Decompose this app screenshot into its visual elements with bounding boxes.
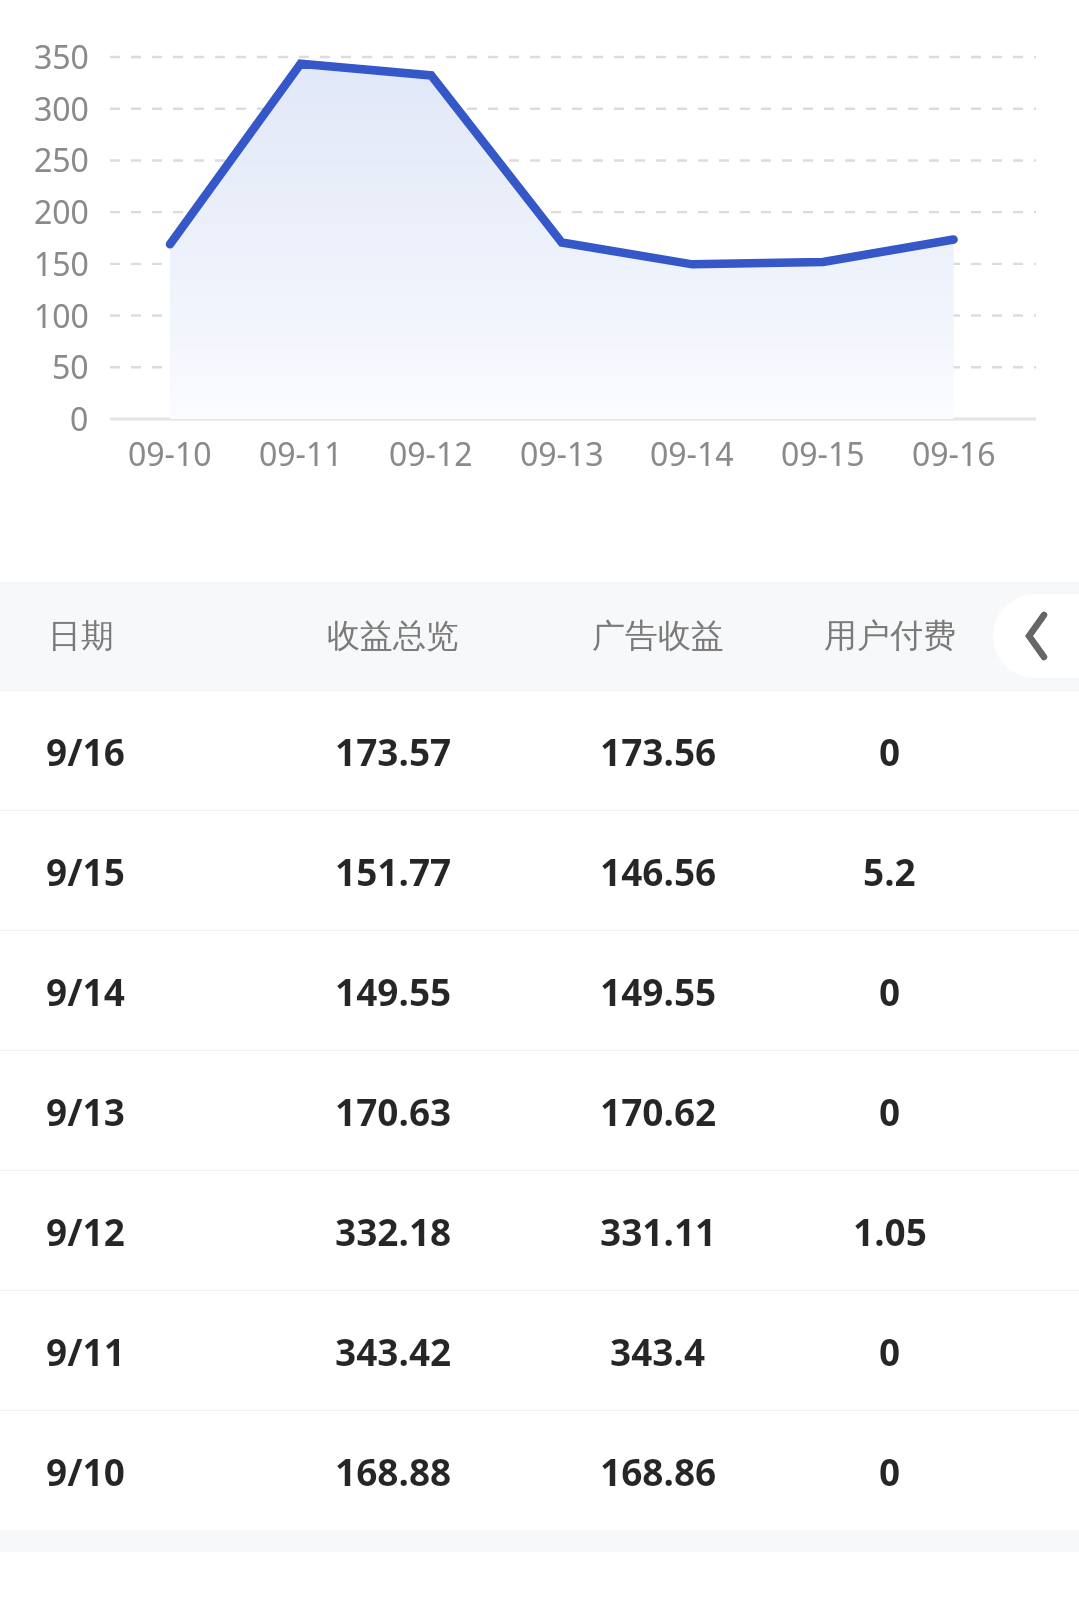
staticText: 9/14 bbox=[46, 966, 125, 1016]
staticText: 09-11 bbox=[259, 432, 343, 476]
button[interactable]: Previous columns bbox=[993, 594, 1079, 678]
staticText: 151.77 bbox=[335, 846, 452, 896]
staticText: 1.05 bbox=[853, 1206, 927, 1256]
staticText: 0 bbox=[879, 1446, 901, 1496]
staticText: 170.62 bbox=[600, 1086, 717, 1136]
staticText: 146.56 bbox=[600, 846, 717, 896]
staticText: 331.11 bbox=[600, 1206, 717, 1256]
staticText: 200 bbox=[34, 190, 89, 234]
button[interactable]: 广告收益 bbox=[526, 615, 790, 657]
staticText: 168.88 bbox=[335, 1446, 452, 1496]
staticText: 0 bbox=[879, 726, 901, 776]
staticText: 09-13 bbox=[520, 432, 604, 476]
button[interactable]: 9/14 bbox=[0, 931, 1079, 1050]
staticText: 用户付费 bbox=[824, 615, 956, 657]
button[interactable]: 9/16 bbox=[0, 691, 1079, 810]
staticText: 09-16 bbox=[912, 432, 996, 476]
button[interactable]: 9/10 bbox=[0, 1411, 1079, 1530]
staticText: 168.86 bbox=[600, 1446, 717, 1496]
staticText: 100 bbox=[34, 294, 89, 338]
button[interactable]: 日期 bbox=[0, 615, 260, 657]
staticText: 50 bbox=[52, 345, 89, 389]
staticText: 343.4 bbox=[610, 1326, 706, 1376]
staticText: 9/13 bbox=[46, 1086, 125, 1136]
staticText: 300 bbox=[34, 87, 89, 131]
staticText: 9/11 bbox=[46, 1326, 125, 1376]
button[interactable]: 9/12 bbox=[0, 1171, 1079, 1290]
staticText: 09-15 bbox=[781, 432, 865, 476]
staticText: 09-14 bbox=[650, 432, 734, 476]
staticText: 0 bbox=[879, 966, 901, 1016]
button[interactable]: 用户付费 bbox=[790, 615, 989, 657]
staticText: 0 bbox=[879, 1326, 901, 1376]
staticText: 150 bbox=[34, 242, 89, 286]
staticText: 250 bbox=[34, 138, 89, 182]
staticText: 9/16 bbox=[46, 726, 125, 776]
staticText: 收益总览 bbox=[327, 615, 459, 657]
button[interactable]: 9/13 bbox=[0, 1051, 1079, 1170]
staticText: 350 bbox=[34, 35, 89, 79]
staticText: 9/15 bbox=[46, 846, 125, 896]
staticText: 日期 bbox=[48, 615, 114, 657]
staticText: 09-12 bbox=[389, 432, 473, 476]
staticText: 343.42 bbox=[335, 1326, 452, 1376]
button[interactable]: 9/11 bbox=[0, 1291, 1079, 1410]
staticText: 9/12 bbox=[46, 1206, 125, 1256]
staticText: 173.56 bbox=[600, 726, 717, 776]
staticText: 09-10 bbox=[128, 432, 212, 476]
staticText: 149.55 bbox=[335, 966, 452, 1016]
staticText: 9/10 bbox=[46, 1446, 125, 1496]
button[interactable]: 9/15 bbox=[0, 811, 1079, 930]
staticText: 332.18 bbox=[335, 1206, 452, 1256]
staticText: 173.57 bbox=[335, 726, 452, 776]
staticText: 149.55 bbox=[600, 966, 717, 1016]
staticText: 广告收益 bbox=[592, 615, 724, 657]
staticText: 0 bbox=[879, 1086, 901, 1136]
staticText: 5.2 bbox=[863, 846, 916, 896]
button[interactable]: 收益总览 bbox=[260, 615, 526, 657]
staticText: 0 bbox=[70, 397, 89, 441]
staticText: 170.63 bbox=[335, 1086, 452, 1136]
